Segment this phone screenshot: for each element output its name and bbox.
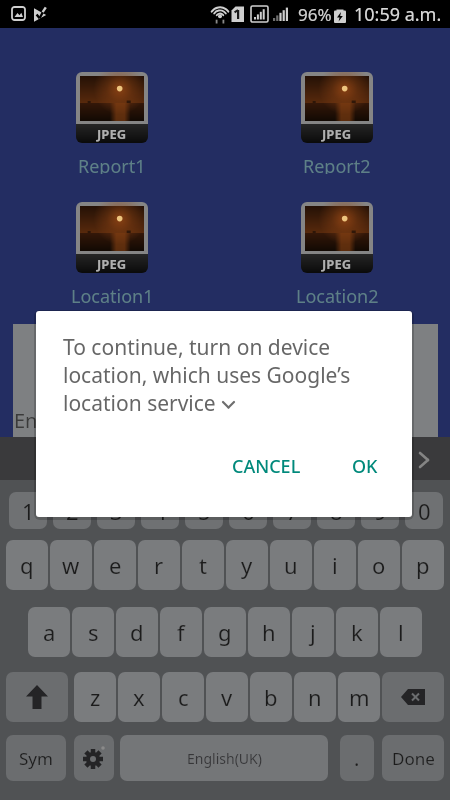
staticText: i [332,550,338,580]
button[interactable]: English(UK) [120,735,328,781]
staticText: 7 [286,496,299,526]
button[interactable]: g [204,607,246,657]
button[interactable]: k [336,607,378,657]
button[interactable]: Done [382,735,444,781]
button[interactable]: f [160,607,202,657]
staticText: Done [392,747,435,770]
staticText: Location2 [296,284,379,304]
staticText: 5 [198,496,211,526]
staticText: x [133,682,145,712]
staticText: c [178,682,189,712]
button[interactable]: a [28,607,70,657]
button[interactable]: v [206,672,248,722]
staticText: English(UK) [187,749,262,768]
button[interactable] [74,735,114,781]
button[interactable]: b [250,672,292,722]
staticText: Enter [14,407,65,434]
button[interactable]: 5 [185,492,223,529]
button[interactable]: z [74,672,116,722]
button[interactable]: p [402,540,444,590]
staticText: Report1 [78,154,146,174]
button[interactable]: OK [344,451,386,482]
staticText: p [416,550,430,580]
staticText: l [398,617,404,647]
button[interactable]: l [380,607,422,657]
staticText: w [62,550,80,580]
button[interactable] [301,72,373,124]
button[interactable]: 3 [97,492,135,529]
staticText: 1 [22,496,35,526]
staticText: CANCEL [232,454,301,479]
staticText: Sym [19,747,53,770]
staticText: 2 [66,496,79,526]
staticText: 6 [242,496,255,526]
staticText: u [284,550,298,580]
button[interactable] [6,672,68,722]
staticText: r [154,550,164,580]
button[interactable] [382,672,444,722]
staticText: JPEG [322,125,352,143]
staticText: JPEG [97,125,127,143]
staticText: v [221,682,233,712]
button[interactable]: 7 [273,492,311,529]
staticText: 8 [330,496,343,526]
button[interactable] [301,202,373,254]
staticText: Report2 [303,154,371,174]
button[interactable]: u [270,540,312,590]
button[interactable]: x [118,672,160,722]
staticText: f [177,617,185,647]
staticText: s [88,617,99,647]
button[interactable]: s [72,607,114,657]
button[interactable] [410,441,450,481]
button[interactable]: Sym [6,735,66,781]
button[interactable]: c [162,672,204,722]
staticText: y [241,550,253,580]
staticText: OK [352,454,378,479]
button[interactable]: 8 [317,492,355,529]
button[interactable] [76,202,148,254]
button[interactable]: r [138,540,180,590]
staticText: 9 [374,496,387,526]
button[interactable]: o [358,540,400,590]
button[interactable]: q [6,540,48,590]
button[interactable]: 9 [361,492,399,529]
button[interactable]: w [50,540,92,590]
staticText: g [218,617,232,647]
staticText: t [199,550,207,580]
staticText: d [130,617,144,647]
staticText: To continue, turn on device location, wh… [63,333,351,417]
staticText: Location1 [71,284,154,304]
staticText: 96% [298,3,332,26]
staticText: a [43,617,56,647]
button[interactable]: n [294,672,336,722]
staticText: q [20,550,34,580]
staticText: o [372,550,386,580]
staticText: . [354,745,360,772]
button[interactable] [76,72,148,124]
button[interactable]: 2 [53,492,91,529]
button[interactable]: i [314,540,356,590]
button[interactable]: e [94,540,136,590]
staticText: z [90,682,101,712]
button[interactable]: CANCEL [228,451,304,482]
staticText: b [264,682,278,712]
staticText: e [109,550,122,580]
staticText: 3 [110,496,123,526]
button[interactable]: d [116,607,158,657]
staticText: m [349,682,370,712]
button[interactable]: t [182,540,224,590]
button[interactable]: 1 [9,492,47,529]
button[interactable]: 0 [405,492,443,529]
button[interactable]: 4 [141,492,179,529]
staticText: JPEG [97,255,127,273]
staticText: 10:59 a.m. [354,2,442,27]
button[interactable]: j [292,607,334,657]
staticText: 0 [418,496,431,526]
button[interactable]: m [338,672,380,722]
button[interactable]: 6 [229,492,267,529]
staticText: h [262,617,276,647]
staticText: k [351,617,363,647]
button[interactable]: . [340,735,374,781]
button[interactable]: y [226,540,268,590]
button[interactable]: h [248,607,290,657]
